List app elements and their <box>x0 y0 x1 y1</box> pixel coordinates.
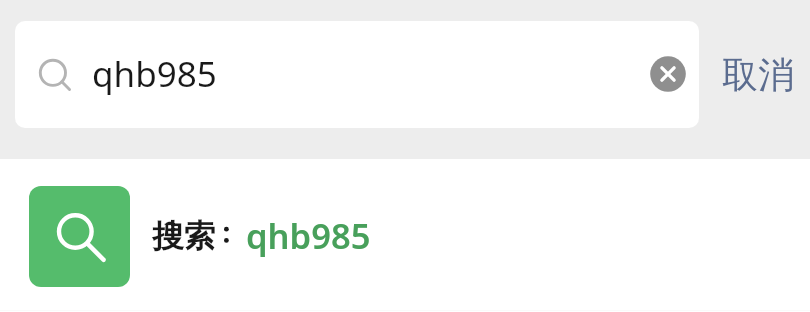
staticText: qhb985 <box>92 50 217 98</box>
staticText: 取消 <box>722 52 794 97</box>
staticText: 搜索 <box>152 217 215 257</box>
button[interactable]: Clear search query <box>625 31 699 117</box>
button[interactable]: qhb985 <box>15 21 699 128</box>
staticText: qhb985 <box>246 212 371 259</box>
button[interactable]: 取消 <box>711 40 805 108</box>
button[interactable]: 搜索 <box>0 159 810 312</box>
